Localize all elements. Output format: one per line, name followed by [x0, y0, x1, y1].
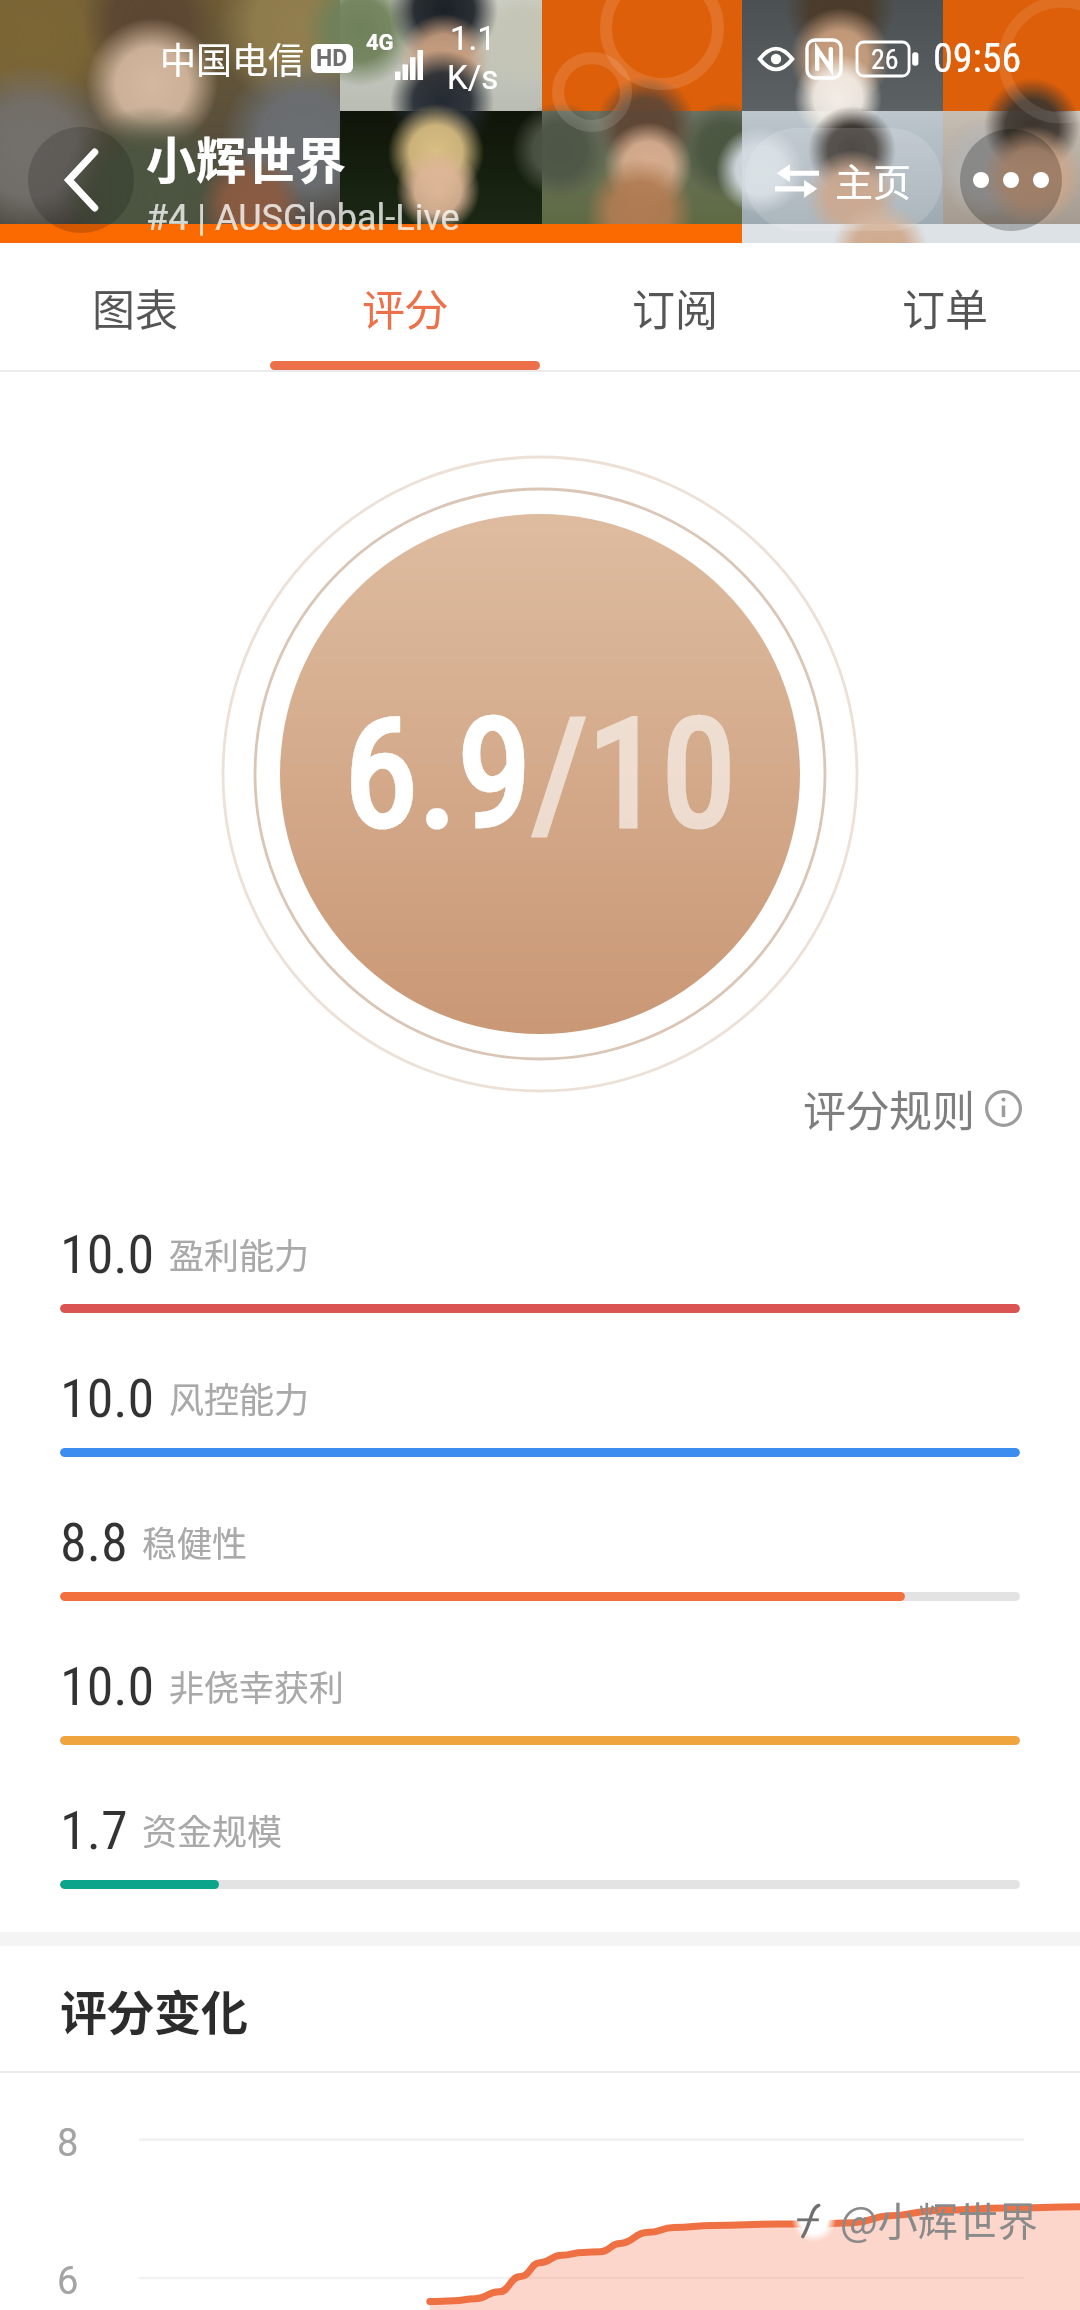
staticText: @小辉世界 — [840, 2190, 1038, 2248]
staticText: 1.7 — [60, 1799, 128, 1862]
staticText: 6.9 — [344, 687, 532, 863]
staticText: 订阅 — [632, 276, 718, 338]
staticText: 8 — [57, 2121, 79, 2166]
staticText: 1.1 — [450, 19, 496, 58]
button[interactable]: 评分规则 — [803, 1077, 1022, 1139]
staticText: 09:56 — [933, 35, 1022, 82]
button[interactable]: 图表 — [0, 243, 270, 372]
button[interactable]: 10.0 — [0, 1319, 1080, 1463]
staticText: /10 — [532, 687, 736, 863]
button[interactable]: 10.0 — [0, 1175, 1080, 1319]
staticText: K/s — [447, 58, 499, 97]
staticText: #4 | AUSGlobal-Live — [146, 197, 460, 239]
staticText: 6 — [57, 2259, 79, 2304]
staticText: 风控能力 — [169, 1372, 310, 1423]
staticText: 8.8 — [60, 1511, 128, 1574]
staticText: HD — [316, 45, 348, 72]
button[interactable]: 8.8 — [0, 1463, 1080, 1607]
button[interactable]: 订单 — [810, 243, 1080, 372]
staticText: 主页 — [835, 152, 912, 207]
staticText: 资金规模 — [142, 1804, 283, 1855]
staticText: 稳健性 — [142, 1516, 248, 1567]
staticText: 10.0 — [60, 1655, 155, 1718]
button[interactable]: 订阅 — [540, 243, 810, 372]
staticText: 10.0 — [60, 1367, 155, 1430]
staticText: 评分规则 — [803, 1077, 975, 1139]
staticText: 中国电信 — [160, 32, 305, 84]
staticText: 图表 — [92, 276, 178, 338]
button[interactable]: Back — [28, 127, 134, 233]
staticText: 10.0 — [60, 1223, 155, 1286]
staticText: 盈利能力 — [169, 1228, 310, 1279]
staticText: 评分变化 — [60, 1975, 248, 2043]
button[interactable]: 评分 — [270, 243, 540, 372]
button[interactable]: More options — [960, 129, 1062, 231]
staticText: 4G — [366, 30, 394, 56]
button[interactable]: 1.7 — [0, 1751, 1080, 1895]
staticText: 26 — [871, 43, 899, 76]
button[interactable]: 10.0 — [0, 1607, 1080, 1751]
staticText: 订单 — [902, 276, 988, 338]
button[interactable]: 主页 — [745, 128, 942, 231]
staticText: 非侥幸获利 — [169, 1660, 345, 1711]
staticText: 小辉世界 — [146, 121, 346, 193]
staticText: 评分 — [362, 276, 448, 338]
